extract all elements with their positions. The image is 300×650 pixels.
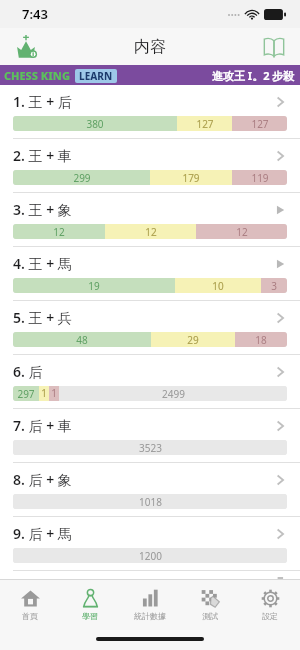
button[interactable]: 設定 bbox=[240, 580, 300, 628]
staticText: 119 bbox=[251, 171, 269, 185]
staticText: 29 bbox=[187, 333, 199, 347]
staticText: 3523 bbox=[139, 441, 162, 455]
staticText: 7:43 bbox=[22, 5, 48, 23]
staticText: 3. 王 + 象 bbox=[13, 200, 273, 219]
staticText: 297 bbox=[17, 387, 35, 401]
staticText: 48 bbox=[76, 333, 88, 347]
staticText: 2. 王 + 車 bbox=[13, 146, 273, 165]
staticText: 179 bbox=[182, 171, 200, 185]
button[interactable]: 9. 后 + 馬 bbox=[0, 517, 300, 570]
button[interactable]: Chess King bbox=[8, 29, 44, 65]
staticText: 105 bbox=[49, 386, 59, 401]
staticText: CHESS KING bbox=[4, 68, 70, 83]
staticText: 内容 bbox=[134, 37, 166, 57]
button[interactable]: 8. 后 + 象 bbox=[0, 463, 300, 516]
button[interactable]: 4. 王 + 馬 bbox=[0, 247, 300, 300]
staticText: 測試 bbox=[202, 611, 218, 621]
staticText: 8. 后 + 象 bbox=[13, 470, 273, 489]
staticText: 127 bbox=[196, 117, 214, 131]
staticText: 設定 bbox=[262, 611, 278, 621]
button[interactable]: Book bbox=[256, 29, 292, 65]
button[interactable]: 3. 王 + 象 bbox=[0, 193, 300, 246]
staticText: 12 bbox=[53, 225, 65, 239]
staticText: 106 bbox=[39, 386, 49, 401]
staticText: 127 bbox=[251, 117, 269, 131]
button[interactable]: 7. 后 + 車 bbox=[0, 409, 300, 462]
staticText: 2499 bbox=[162, 387, 185, 401]
button[interactable]: 5. 王 + 兵 bbox=[0, 301, 300, 354]
staticText: 1018 bbox=[139, 495, 162, 509]
staticText: 9. 后 + 馬 bbox=[13, 524, 273, 543]
staticText: 18 bbox=[255, 333, 267, 347]
staticText: 首頁 bbox=[22, 611, 38, 621]
staticText: 4. 王 + 馬 bbox=[13, 254, 273, 273]
staticText: 12 bbox=[236, 225, 248, 239]
staticText: 1200 bbox=[139, 549, 162, 563]
staticText: 5. 王 + 兵 bbox=[13, 308, 273, 327]
button[interactable]: 學習 bbox=[60, 580, 120, 628]
staticText: 299 bbox=[73, 171, 91, 185]
staticText: 10 bbox=[212, 279, 224, 293]
staticText: 3 bbox=[271, 279, 277, 293]
staticText: 380 bbox=[86, 117, 104, 131]
staticText: 12 bbox=[145, 225, 157, 239]
button[interactable]: 1. 王 + 后 bbox=[0, 85, 300, 138]
staticText: 1. 王 + 后 bbox=[13, 92, 273, 111]
staticText: 進攻王 I。2 步殺 bbox=[212, 68, 295, 83]
button[interactable]: 首頁 bbox=[0, 580, 60, 628]
button[interactable]: 測試 bbox=[180, 580, 240, 628]
button[interactable]: 統計數據 bbox=[120, 580, 180, 628]
button[interactable]: 10. 后 + 兵 bbox=[0, 571, 300, 579]
button[interactable]: 2. 王 + 車 bbox=[0, 139, 300, 192]
staticText: LEARN bbox=[79, 69, 113, 83]
staticText: 6. 后 bbox=[13, 362, 273, 381]
staticText: 7. 后 + 車 bbox=[13, 416, 273, 435]
staticText: 19 bbox=[88, 279, 100, 293]
button[interactable]: 6. 后 bbox=[0, 355, 300, 408]
staticText: 統計數據 bbox=[134, 611, 166, 621]
staticText: 學習 bbox=[82, 611, 98, 621]
